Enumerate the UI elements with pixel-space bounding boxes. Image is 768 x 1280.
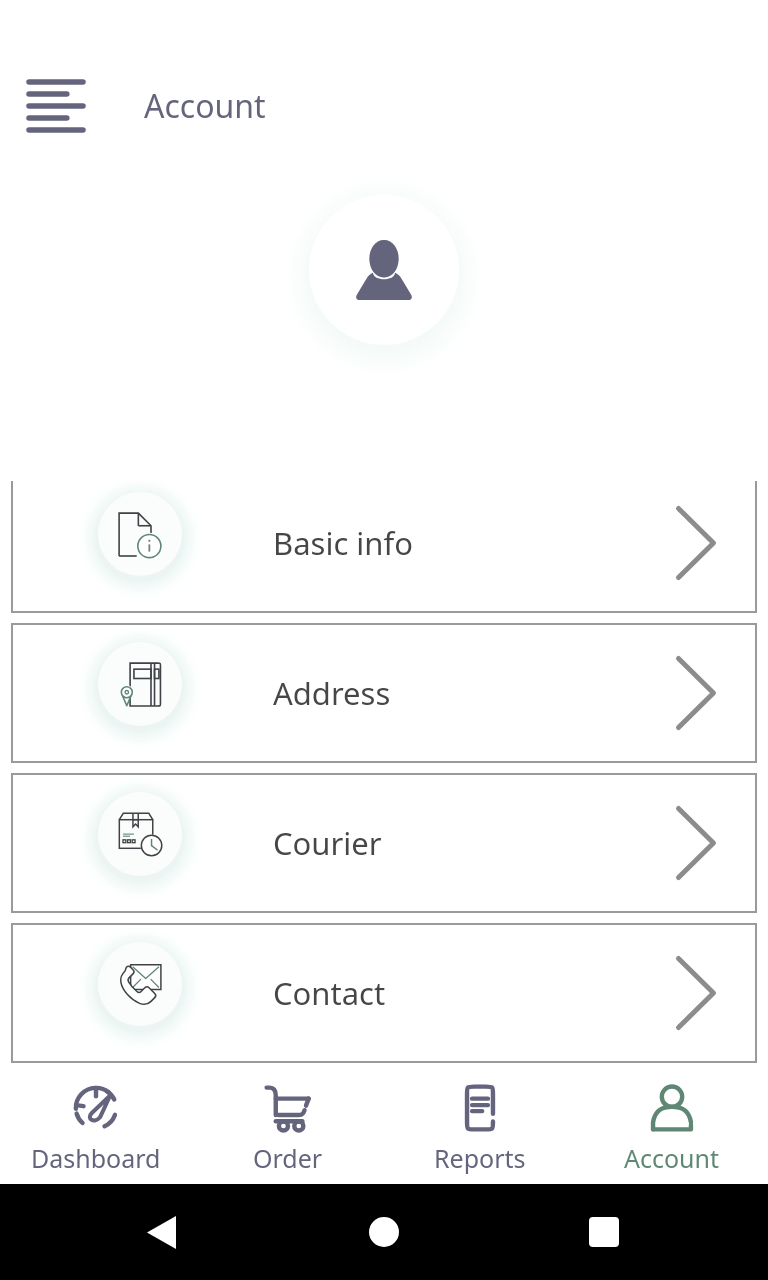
staticText: Account — [624, 1141, 720, 1175]
button[interactable]: Basic info — [11, 481, 757, 613]
staticText: Dashboard — [31, 1141, 161, 1175]
button[interactable]: Menu — [29, 76, 85, 132]
button[interactable]: Recent apps — [574, 1202, 634, 1262]
button[interactable]: Dashboard — [0, 1063, 192, 1184]
button[interactable]: Order — [192, 1063, 384, 1184]
button[interactable]: Account — [576, 1063, 768, 1184]
staticText: Order — [253, 1141, 323, 1175]
button[interactable]: Address — [11, 623, 757, 763]
button[interactable]: Back — [131, 1202, 191, 1262]
button[interactable]: Contact — [11, 923, 757, 1063]
staticText: Address — [273, 672, 391, 714]
staticText: Contact — [273, 972, 386, 1014]
staticText: Basic info — [273, 522, 413, 564]
staticText: Account — [144, 84, 266, 128]
staticText: Courier — [273, 822, 382, 864]
button[interactable]: Home — [354, 1202, 414, 1262]
button[interactable]: Reports — [384, 1063, 576, 1184]
staticText: Reports — [434, 1141, 526, 1175]
button[interactable]: Courier — [11, 773, 757, 913]
